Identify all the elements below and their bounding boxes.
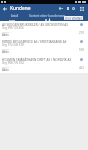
staticText: Kunde bbox=[2, 30, 10, 33]
staticText: Antall bbox=[11, 14, 18, 18]
staticText: Aktiv bbox=[2, 50, 9, 54]
staticText: 132 978 bbox=[9, 19, 20, 29]
staticText: Aktiv bbox=[2, 68, 9, 72]
staticText: A–Å bbox=[45, 19, 51, 23]
staticText: HOLMEN SMÅBÅTHAVN DRIFT AS / NORDVIK AS bbox=[2, 58, 72, 62]
staticText: AS SKOGEN BRUKSBILER / AS GROSSISTEN AS bbox=[2, 23, 68, 27]
staticText: 219 bbox=[79, 31, 84, 35]
staticText: Org 912 345 678 bbox=[2, 43, 24, 47]
button[interactable]: FØRDE BYGGSERVICE AS / KRISTIANSAND AS bbox=[0, 38, 88, 55]
button[interactable]: Back bbox=[0, 4, 9, 13]
staticText: 462 bbox=[79, 66, 84, 70]
staticText: VELG VISNING bbox=[65, 17, 83, 20]
staticText: Org 998 123 456 bbox=[2, 26, 24, 30]
staticText: Org 998 776 554 bbox=[2, 61, 24, 65]
button[interactable]: VELG VISNING bbox=[64, 16, 83, 20]
staticText: Kundene bbox=[10, 5, 31, 12]
button[interactable]: HOLMEN SMÅBÅTHAVN DRIFT AS / NORDVIK AS bbox=[0, 56, 88, 73]
staticText: FØRDE BYGGSERVICE AS / KRISTIANSAND AS bbox=[2, 40, 67, 44]
button[interactable]: Export bbox=[57, 4, 64, 13]
staticText: Aktiv bbox=[2, 33, 9, 37]
staticText: Kunde bbox=[2, 65, 10, 68]
button[interactable]: Print bbox=[64, 4, 71, 13]
staticText: Sortert etter kundenavn bbox=[29, 14, 66, 18]
button[interactable]: AS SKOGEN BRUKSBILER / AS GROSSISTEN AS bbox=[0, 21, 88, 38]
button[interactable]: Search bbox=[70, 4, 77, 13]
button[interactable]: More options bbox=[77, 4, 86, 13]
staticText: 108 bbox=[79, 48, 84, 52]
staticText: Kunde bbox=[2, 47, 10, 50]
